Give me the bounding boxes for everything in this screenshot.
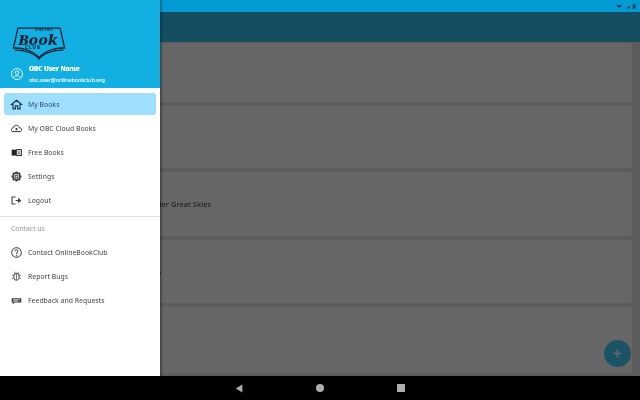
button[interactable]: Wander Great Skies [5, 172, 632, 236]
button[interactable]: Back [227, 376, 251, 400]
button[interactable]: My Books [4, 93, 156, 115]
button[interactable]: Ash [5, 307, 632, 373]
button[interactable]: Contact OnlineBookClub [4, 241, 156, 263]
button[interactable]: Tide [5, 43, 632, 102]
staticText: Book [18, 29, 58, 49]
staticText: Wander Great Skies [141, 199, 212, 209]
staticText: Feedback and Requests [28, 296, 105, 305]
button[interactable]: Home [308, 376, 332, 400]
staticText: My OBC Cloud Books [28, 124, 96, 133]
staticText: Free Books [28, 148, 64, 157]
staticText: Contact us [11, 224, 45, 233]
staticText: My Books [28, 100, 60, 109]
button[interactable]: Recent apps [389, 376, 413, 400]
button[interactable]: Logout [4, 189, 156, 211]
staticText: OBC User Name [29, 64, 80, 73]
button[interactable]: Dusk [5, 106, 632, 168]
staticText: Settings [28, 172, 55, 181]
staticText: Lamp [141, 267, 162, 277]
staticText: obc.user@onlinebookclub.org [29, 76, 105, 83]
button[interactable]: Report Bugs [4, 265, 156, 287]
button[interactable]: Free Books [4, 141, 156, 163]
button[interactable]: Lamp [5, 240, 632, 303]
staticText: Contact OnlineBookClub [28, 248, 108, 257]
staticText: Logout [28, 196, 52, 205]
staticText: ONLINE [35, 27, 53, 32]
staticText: CLUB [25, 44, 41, 51]
button[interactable]: Settings [4, 165, 156, 187]
staticText: Report Bugs [28, 272, 69, 281]
button[interactable]: My OBC Cloud Books [4, 117, 156, 139]
button[interactable]: Add book [604, 340, 631, 367]
button[interactable]: Feedback and Requests [4, 289, 156, 311]
